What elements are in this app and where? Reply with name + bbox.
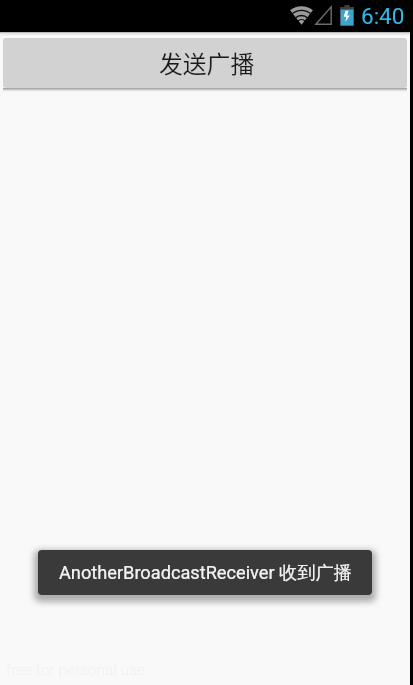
other: Mobile signal (315, 6, 332, 25)
other: Wi-Fi signal (290, 6, 313, 25)
other: Battery charging (340, 5, 354, 26)
staticText: AnotherBroadcastReceiver 收到广播 (59, 561, 352, 584)
staticText: 发送广播 (159, 45, 255, 79)
button[interactable]: 发送广播 (3, 38, 407, 88)
staticText: 6:40 (361, 3, 405, 29)
